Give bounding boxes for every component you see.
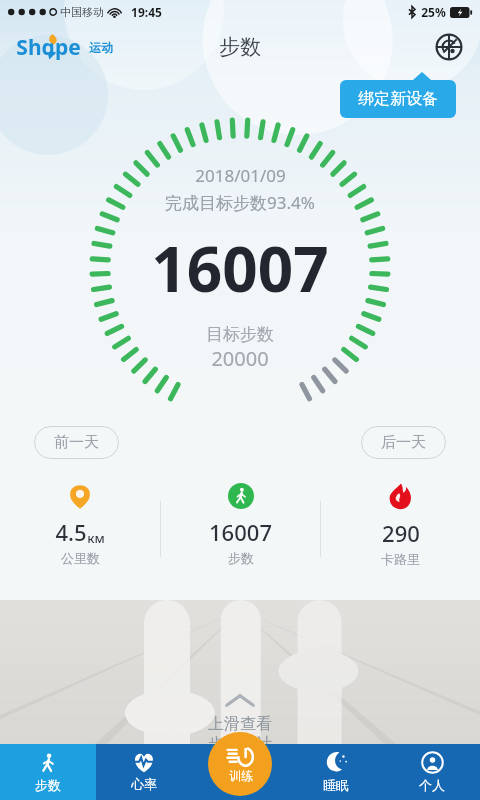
staticText: 290 bbox=[382, 518, 420, 548]
button[interactable]: Shape 运动 bbox=[16, 33, 113, 62]
button[interactable]: 睡眠 bbox=[288, 744, 384, 800]
staticText: 绑定新设备 bbox=[358, 89, 438, 109]
staticText: 25% bbox=[421, 4, 446, 20]
staticText: 后一天 bbox=[381, 433, 426, 452]
staticText: 心率 bbox=[131, 776, 157, 792]
staticText: 16007 bbox=[151, 226, 329, 310]
button[interactable]: 个人 bbox=[384, 744, 480, 800]
button[interactable]: 步数 bbox=[0, 744, 96, 800]
button[interactable]: 绑定新设备 bbox=[340, 72, 456, 118]
staticText: 步数 bbox=[219, 34, 261, 60]
staticText: 卡路里 bbox=[381, 551, 420, 567]
staticText: 中国移动 bbox=[60, 5, 104, 19]
staticText: 训练 bbox=[229, 768, 253, 783]
staticText: 目标步数 bbox=[206, 324, 274, 345]
button[interactable]: 前一天 bbox=[34, 426, 119, 459]
staticText: км bbox=[87, 529, 105, 547]
button[interactable]: 心率 bbox=[96, 744, 192, 800]
staticText: 公里数 bbox=[61, 550, 100, 566]
button[interactable]: 16007 bbox=[161, 483, 320, 566]
staticText: 4.5 bbox=[55, 517, 87, 547]
staticText: 运动 bbox=[89, 40, 113, 55]
staticText: 上滑查看 bbox=[208, 714, 272, 734]
staticText: 16007 bbox=[209, 517, 272, 547]
staticText: 步数统计 bbox=[208, 734, 272, 754]
staticText: 前一天 bbox=[54, 433, 99, 452]
button[interactable]: 训练 bbox=[208, 732, 272, 796]
staticText: 睡眠 bbox=[323, 777, 349, 793]
button[interactable]: 290 bbox=[321, 483, 480, 567]
button[interactable]: 扫描绑定设备 bbox=[432, 30, 466, 64]
button[interactable]: 4.5 bbox=[0, 483, 160, 566]
staticText: 2018/01/09 bbox=[195, 164, 286, 187]
staticText: 完成目标步数93.4% bbox=[165, 191, 315, 214]
staticText: Shɑpe bbox=[16, 33, 81, 62]
button[interactable]: 后一天 bbox=[361, 426, 446, 459]
staticText: 步数 bbox=[35, 777, 61, 793]
staticText: 19:45 bbox=[131, 4, 162, 20]
staticText: 个人 bbox=[419, 777, 445, 793]
staticText: 步数 bbox=[228, 550, 254, 566]
staticText: 20000 bbox=[211, 345, 269, 372]
button[interactable]: 上滑查看 bbox=[0, 693, 480, 754]
